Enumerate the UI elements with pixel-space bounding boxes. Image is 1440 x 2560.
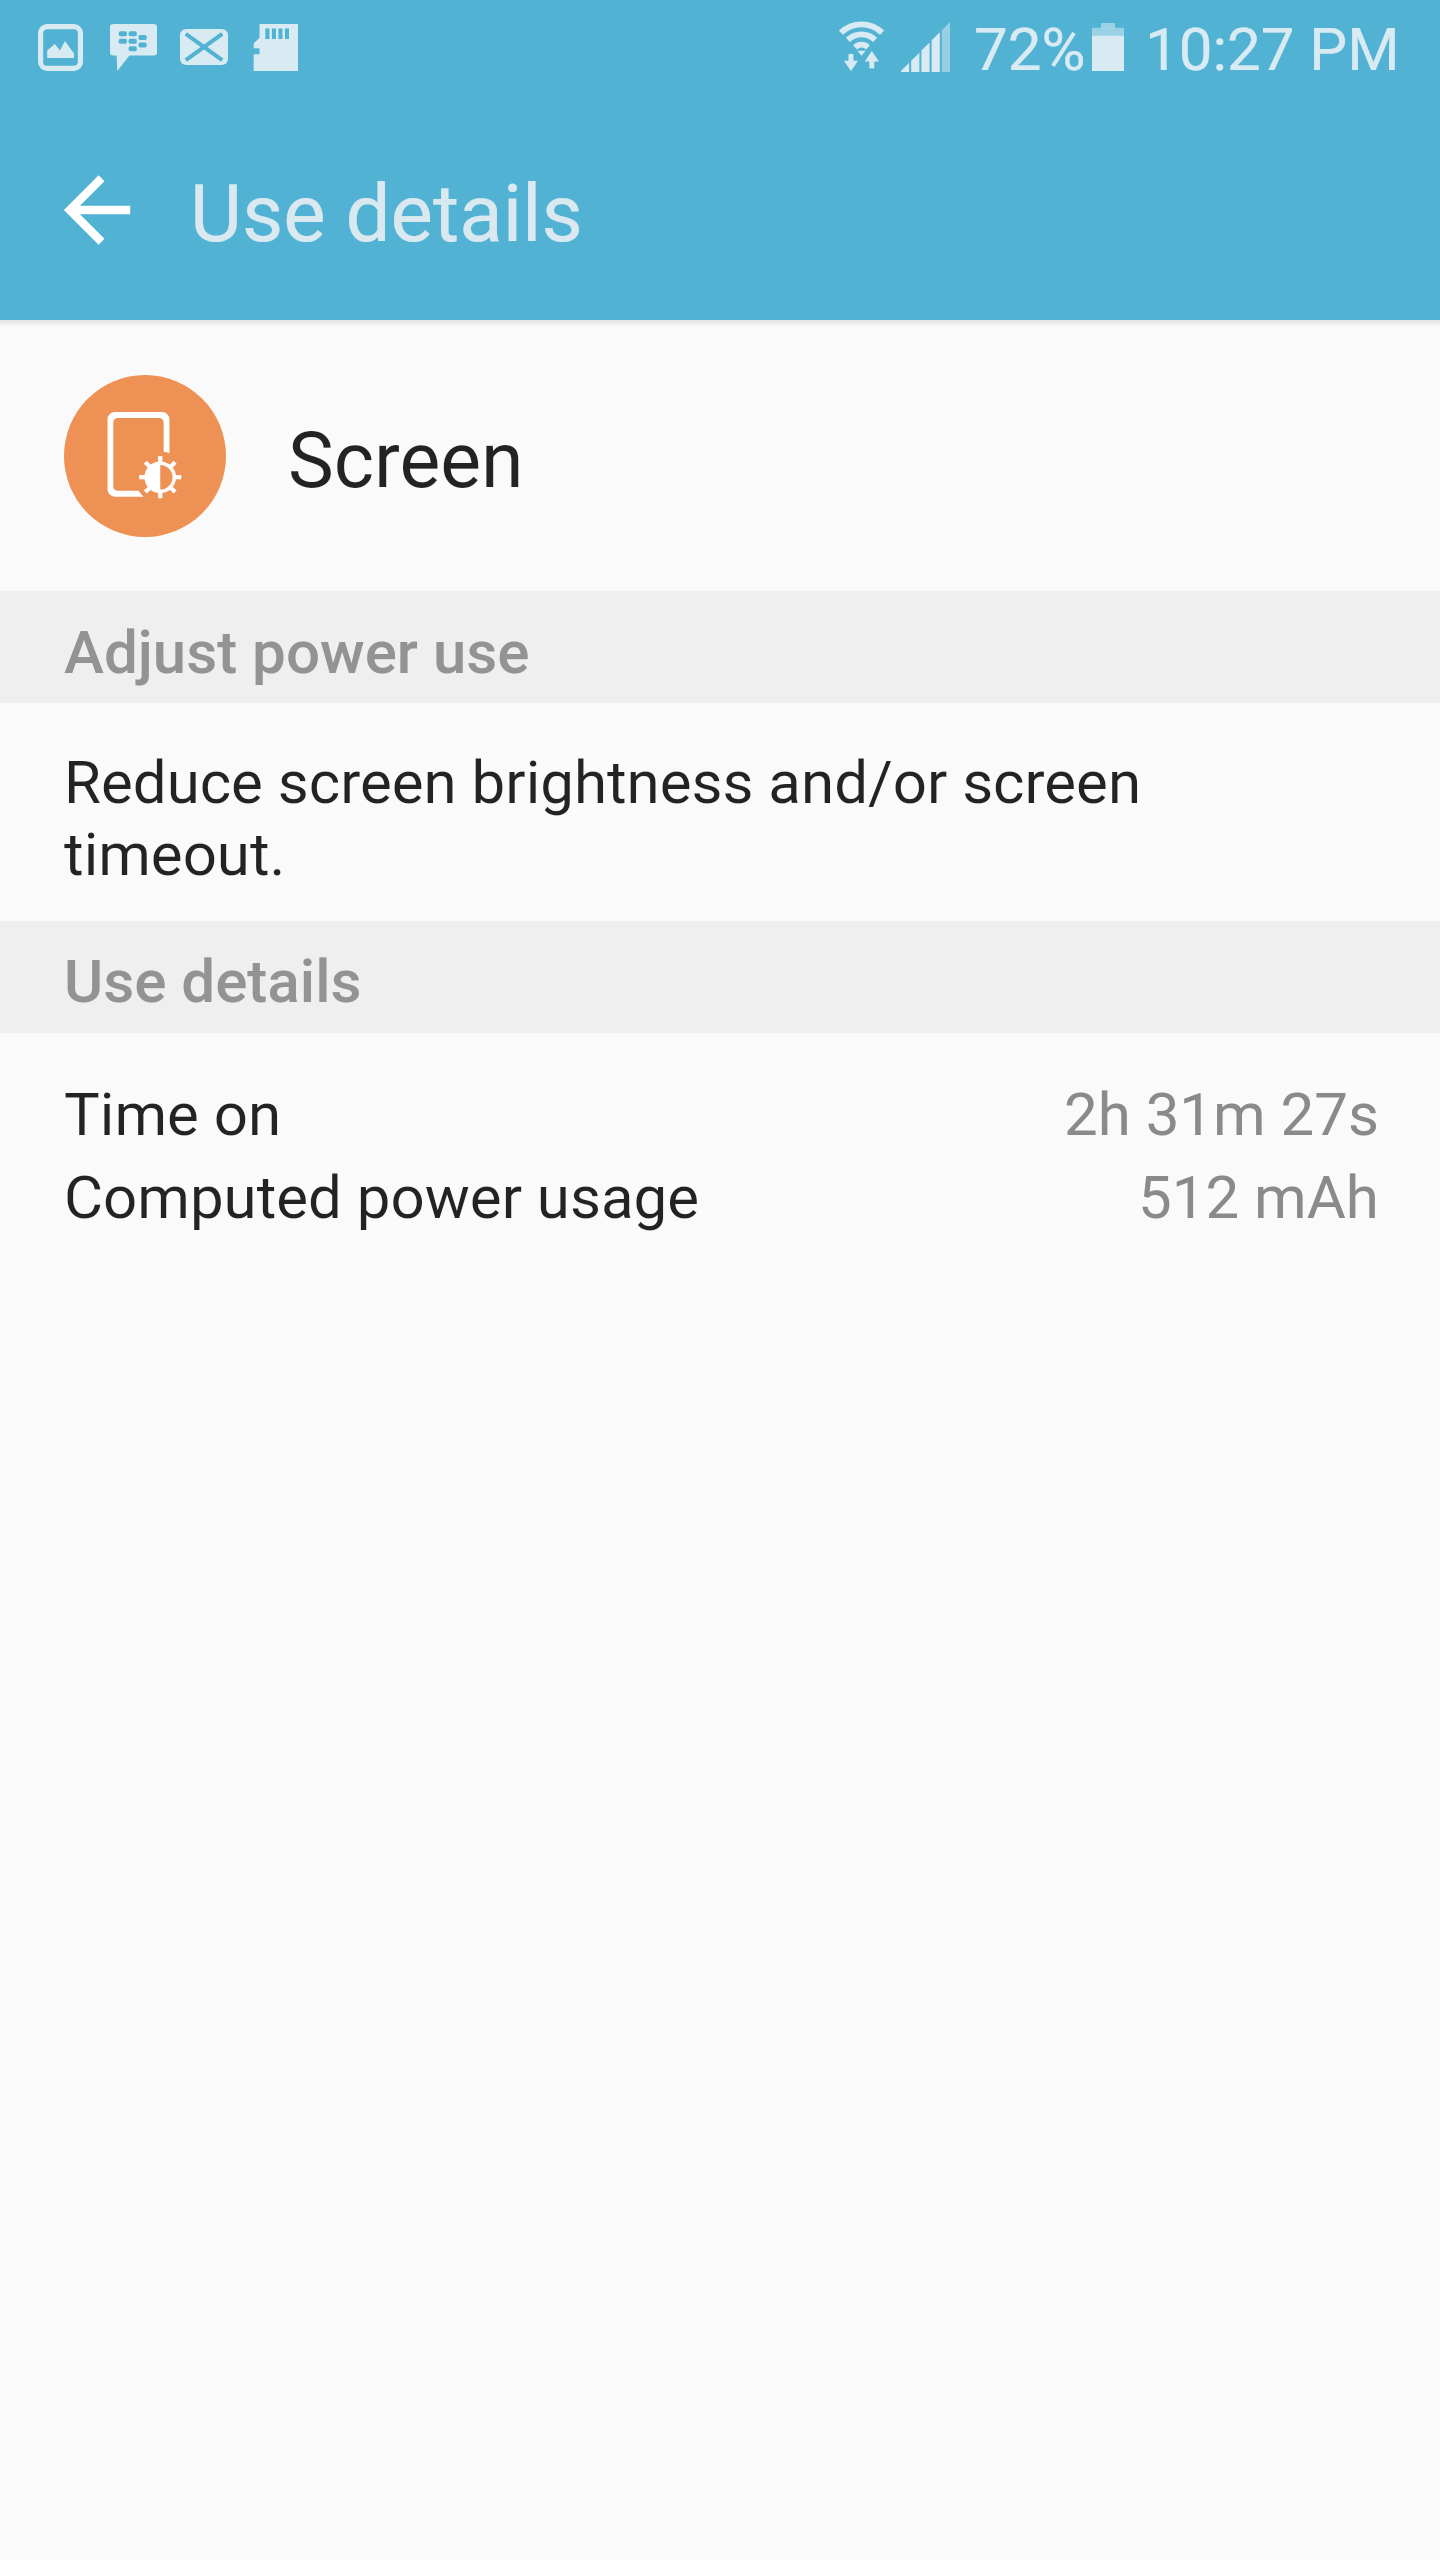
button[interactable]: Screen <box>0 320 1440 591</box>
button[interactable]: Time on <box>0 1079 1440 1163</box>
staticText: Adjust power use <box>64 617 530 687</box>
staticText: Use details <box>190 167 583 261</box>
staticText: Reduce screen brightness and/or screen t… <box>64 747 1164 890</box>
staticText: 2h 31m 27s <box>1064 1079 1379 1149</box>
staticText: Computed power usage <box>64 1162 700 1232</box>
staticText: Use details <box>64 946 362 1016</box>
button[interactable]: Navigate up <box>34 146 162 274</box>
staticText: 10:27 PM <box>1145 14 1400 84</box>
staticText: Screen <box>288 416 524 506</box>
staticText: 72% <box>974 14 1086 84</box>
staticText: Time on <box>64 1079 282 1149</box>
staticText: 512 mAh <box>1138 1162 1379 1232</box>
button[interactable]: Computed power usage <box>0 1162 1440 1246</box>
